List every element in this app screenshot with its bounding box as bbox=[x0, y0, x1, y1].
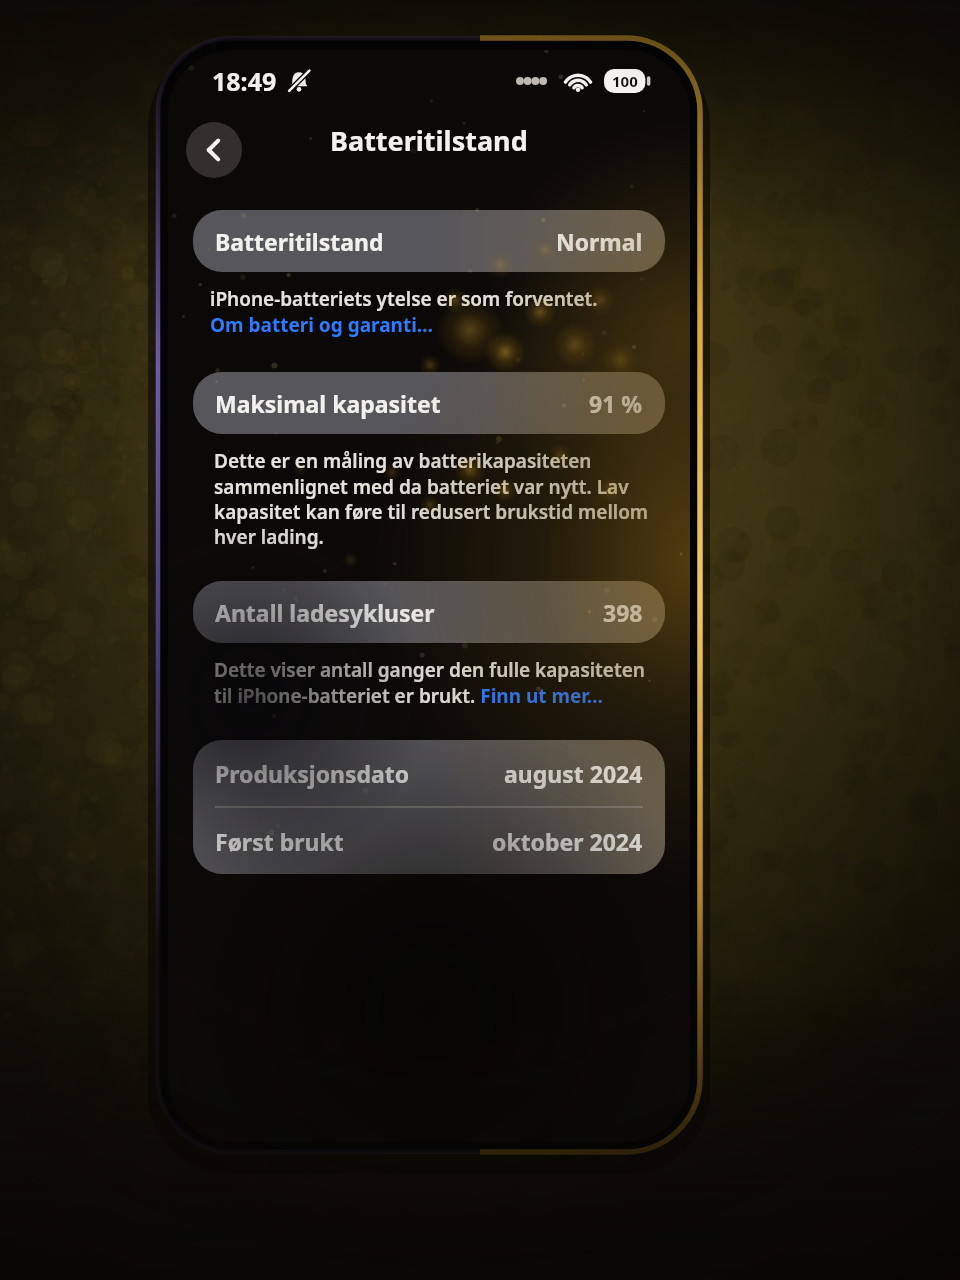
staticText: august 2024 bbox=[504, 758, 643, 789]
button[interactable]: Tilbake bbox=[186, 122, 242, 178]
staticText: 398 bbox=[603, 597, 643, 628]
staticText: Normal bbox=[556, 226, 643, 257]
staticText: Om batteri og garanti… bbox=[210, 312, 434, 338]
staticText: iPhone-batteriets ytelse er som forvente… bbox=[210, 286, 598, 312]
staticText: 18:49 bbox=[212, 64, 277, 98]
staticText: Dette viser antall ganger den fulle kapa… bbox=[214, 657, 664, 708]
staticText: Maksimal kapasitet bbox=[215, 388, 441, 419]
staticText: Antall ladesykluser bbox=[215, 597, 435, 628]
staticText: Først brukt bbox=[215, 826, 344, 857]
staticText: Produksjonsdato bbox=[215, 758, 410, 789]
staticText: 91 % bbox=[589, 388, 643, 419]
button[interactable]: Først brukt bbox=[193, 808, 665, 874]
staticText: oktober 2024 bbox=[492, 826, 643, 857]
staticText: Batteritilstand bbox=[330, 122, 528, 159]
staticText: Dette er en måling av batterikapasiteten… bbox=[214, 448, 660, 549]
staticText: Batteritilstand bbox=[215, 226, 384, 257]
button[interactable]: Maksimal kapasitet bbox=[193, 372, 665, 434]
button[interactable]: Antall ladesykluser bbox=[193, 581, 665, 643]
staticText: 100 bbox=[612, 71, 638, 91]
button[interactable]: Produksjonsdato bbox=[193, 740, 665, 806]
button[interactable]: Om batteri og garanti… bbox=[210, 312, 434, 338]
button[interactable]: Batteritilstand bbox=[193, 210, 665, 272]
